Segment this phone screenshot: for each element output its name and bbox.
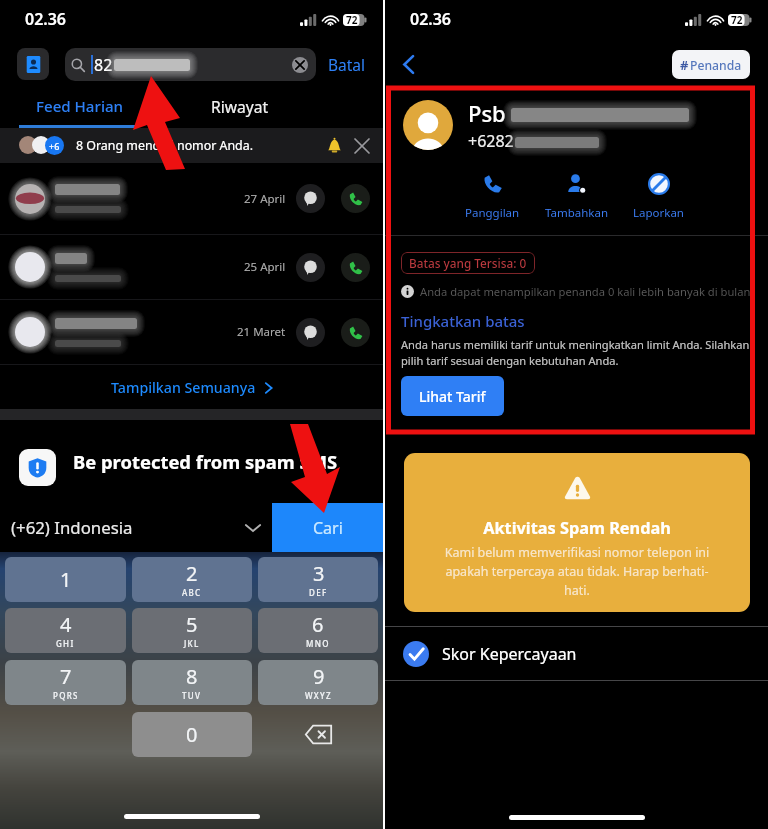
- button[interactable]: 25 April: [0, 235, 383, 299]
- staticText: Batal: [328, 54, 366, 75]
- staticText: 2: [186, 560, 198, 587]
- button[interactable]: 82: [65, 48, 316, 81]
- staticText: Feed Harian: [36, 96, 124, 117]
- staticText: GHI: [56, 638, 75, 649]
- staticText: 1: [60, 566, 72, 593]
- staticText: 02.36: [25, 8, 67, 30]
- button[interactable]: Tambahkan: [541, 173, 613, 221]
- button[interactable]: Message: [296, 184, 325, 213]
- button[interactable]: Call: [341, 318, 370, 347]
- button[interactable]: Backspace: [258, 712, 378, 757]
- button[interactable]: 1: [5, 557, 126, 602]
- button[interactable]: +6: [0, 128, 383, 163]
- staticText: Batas yang Tersisa: 0: [409, 255, 527, 271]
- staticText: 25 April: [244, 259, 286, 275]
- button[interactable]: 0: [132, 712, 252, 757]
- staticText: +6: [49, 140, 60, 152]
- button[interactable]: Message: [296, 318, 325, 347]
- button[interactable]: Feed Harian: [0, 86, 160, 126]
- button[interactable]: 9: [258, 660, 378, 705]
- staticText: PQRS: [53, 690, 79, 701]
- other: Clear: [292, 57, 308, 73]
- staticText: Tampilkan Semuanya: [111, 378, 256, 397]
- staticText: ABC: [182, 587, 202, 598]
- staticText: #: [680, 56, 689, 74]
- staticText: Kami belum memverifikasi nomor telepon i…: [444, 544, 710, 599]
- button[interactable]: #: [672, 50, 750, 79]
- staticText: Cari: [313, 517, 343, 539]
- staticText: Tingkatkan batas: [401, 311, 525, 331]
- staticText: Skor Kepercayaan: [442, 643, 577, 665]
- staticText: 6: [312, 611, 324, 638]
- button[interactable]: Call: [341, 184, 370, 213]
- button[interactable]: Aktivitas Spam Rendah: [404, 453, 750, 612]
- staticText: 21 Maret: [237, 324, 286, 340]
- button[interactable]: Tampilkan Semuanya: [0, 365, 383, 409]
- other: Close: [355, 139, 369, 153]
- staticText: Laporkan: [633, 205, 684, 221]
- button[interactable]: 8: [132, 660, 252, 705]
- button[interactable]: 5: [132, 608, 252, 653]
- staticText: 82: [94, 54, 113, 76]
- staticText: Psb: [468, 98, 506, 128]
- button[interactable]: Lihat Tarif: [401, 376, 504, 416]
- button[interactable]: Skor Kepercayaan: [385, 627, 768, 680]
- staticText: Riwayat: [211, 96, 269, 117]
- staticText: 27 April: [244, 191, 286, 207]
- button[interactable]: 2: [132, 557, 252, 602]
- button[interactable]: Batal: [328, 54, 366, 75]
- button[interactable]: 21 Maret: [0, 300, 383, 364]
- staticText: (+62) Indonesia: [11, 516, 133, 539]
- staticText: 3: [313, 560, 325, 587]
- staticText: Lihat Tarif: [419, 387, 486, 406]
- button[interactable]: Call: [341, 253, 370, 282]
- staticText: Penanda: [690, 57, 742, 74]
- button[interactable]: Riwayat: [160, 86, 320, 126]
- staticText: Anda harus memiliki tarif untuk meningka…: [401, 337, 754, 368]
- button[interactable]: Message: [296, 253, 325, 282]
- staticText: MNO: [306, 638, 330, 649]
- staticText: Aktivitas Spam Rendah: [483, 517, 671, 539]
- button[interactable]: 6: [258, 608, 378, 653]
- button[interactable]: 7: [5, 660, 126, 705]
- button[interactable]: Back: [393, 49, 423, 79]
- button[interactable]: Cari: [272, 503, 383, 552]
- staticText: Be protected from spam SMS: [73, 449, 338, 474]
- staticText: 0: [186, 721, 198, 748]
- staticText: 5: [186, 611, 198, 638]
- staticText: 4: [60, 611, 72, 638]
- staticText: 72: [731, 13, 743, 27]
- staticText: WXYZ: [305, 690, 332, 701]
- button[interactable]: 4: [5, 608, 126, 653]
- staticText: 02.36: [410, 8, 452, 30]
- staticText: +6282: [468, 130, 514, 152]
- button[interactable]: 3: [258, 557, 378, 602]
- staticText: 9: [313, 663, 325, 690]
- staticText: 8: [186, 663, 198, 690]
- staticText: JKL: [184, 638, 200, 649]
- staticText: TUV: [182, 690, 202, 701]
- button[interactable]: Contacts: [17, 48, 49, 80]
- button[interactable]: Laporkan: [629, 173, 688, 221]
- staticText: Anda dapat menampilkan penanda 0 kali le…: [420, 284, 754, 299]
- staticText: Tambahkan: [545, 205, 609, 221]
- button[interactable]: 27 April: [0, 163, 383, 234]
- button[interactable]: Panggilan: [461, 173, 524, 221]
- button[interactable]: (+62) Indonesia: [0, 503, 272, 552]
- staticText: 7: [60, 663, 72, 690]
- staticText: Panggilan: [465, 205, 520, 221]
- staticText: DEF: [309, 587, 328, 598]
- staticText: 72: [346, 13, 358, 27]
- staticText: 8 Orang mencari nomor Anda.: [76, 137, 254, 154]
